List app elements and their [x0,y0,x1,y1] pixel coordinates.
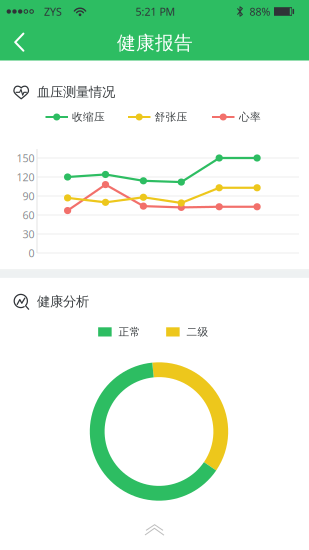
staticText: 5:21 PM [135,4,175,19]
staticText: 0 [28,246,34,260]
staticText: 150 [16,151,34,165]
staticText: 88% [249,4,270,19]
staticText: 心率 [239,110,261,123]
staticText: 收缩压 [72,110,105,123]
staticText: 健康报告 [117,31,193,54]
button[interactable]: Expand [134,514,174,544]
button[interactable]: Back [0,25,44,61]
staticText: 120 [16,170,34,184]
staticText: 正常 [118,325,140,338]
staticText: ZYS [44,4,62,19]
staticText: 舒张压 [154,110,187,123]
staticText: 二级 [186,325,208,338]
staticText: 30 [22,227,34,241]
staticText: 血压测量情况 [37,84,115,100]
staticText: 健康分析 [37,293,89,310]
staticText: 90 [22,189,34,203]
staticText: 60 [22,208,34,222]
